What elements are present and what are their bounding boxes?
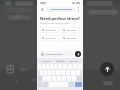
button[interactable]: Key <box>75 82 82 87</box>
button[interactable] <box>46 7 75 12</box>
staticText: t <box>16 79 18 86</box>
staticText: 16K <box>102 79 113 87</box>
button[interactable]: Scroll to top <box>100 62 114 76</box>
button[interactable]: Back <box>39 6 45 12</box>
button[interactable] <box>61 35 80 41</box>
button[interactable]: More options <box>76 7 81 12</box>
staticText: Need perfect shots? <box>40 16 80 21</box>
button[interactable] <box>40 35 59 41</box>
button[interactable] <box>39 51 73 57</box>
staticText: Sav <box>19 66 28 73</box>
button[interactable]: Send <box>75 51 81 57</box>
button[interactable] <box>40 27 59 33</box>
button[interactable] <box>61 27 80 33</box>
button[interactable]: Save <box>4 63 17 76</box>
